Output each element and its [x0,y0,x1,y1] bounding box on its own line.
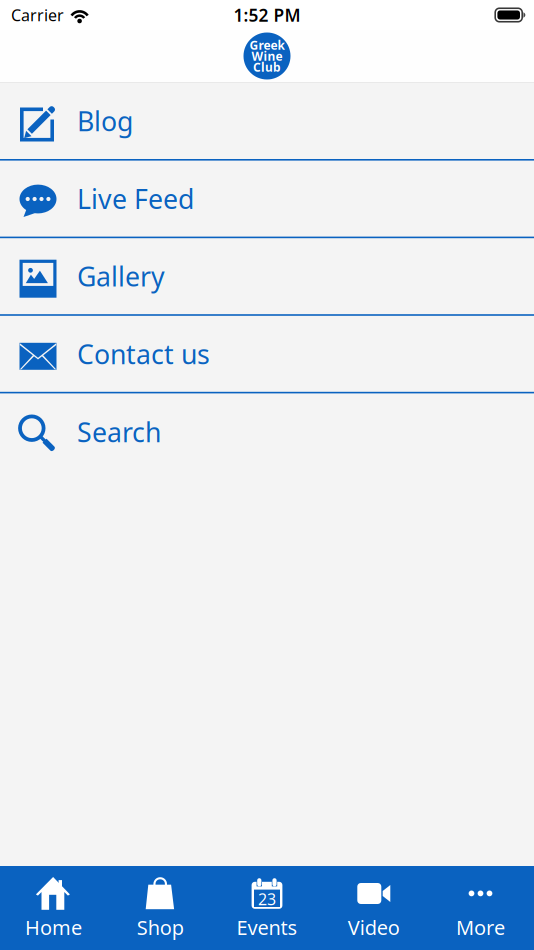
staticText: Shop [137,914,184,941]
button[interactable]: Video [320,866,427,950]
button[interactable]: Contact us [0,316,534,393]
staticText: Home [25,914,82,941]
button[interactable]: Shop [107,866,214,950]
staticText: Live Feed [77,181,194,216]
staticText: Gallery [77,258,165,294]
staticText: 1:52 PM [233,3,300,26]
staticText: Wine [251,48,282,64]
staticText: Events [236,914,297,941]
staticText: Search [77,414,161,450]
staticText: More [456,914,505,941]
button[interactable]: Gallery [0,238,534,316]
button[interactable]: Search [0,393,534,470]
button[interactable]: Home [0,866,107,950]
button[interactable]: 23 [214,866,320,950]
button[interactable]: Live Feed [0,161,534,238]
button[interactable]: Blog [0,83,534,161]
staticText: Greek [249,37,284,53]
staticText: Contact us [77,336,210,371]
staticText: 23 [258,888,276,910]
staticText: Blog [77,103,133,139]
staticText: Club [253,59,281,75]
staticText: Video [348,914,400,941]
staticText: Carrier [11,4,64,26]
button[interactable]: More [427,866,534,950]
